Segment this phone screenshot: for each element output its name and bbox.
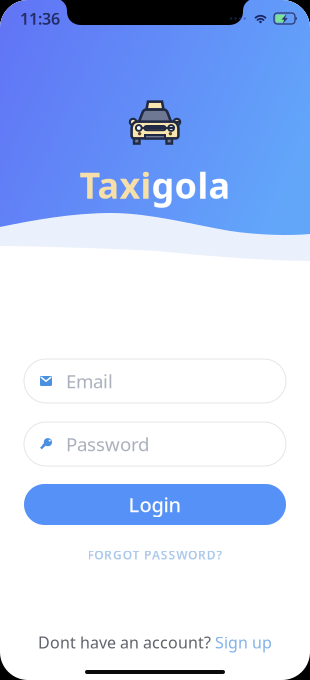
staticText: Sign up bbox=[215, 632, 272, 653]
button[interactable]: Sign up bbox=[215, 632, 272, 653]
staticText: gola bbox=[151, 161, 230, 209]
staticText: FORGOT PASSWORD? bbox=[87, 547, 222, 563]
staticText: Password bbox=[66, 432, 149, 456]
staticText: Dont have an account? bbox=[38, 632, 211, 653]
button[interactable]: Login bbox=[24, 484, 286, 525]
staticText: 11:36 bbox=[20, 8, 60, 29]
button[interactable]: FORGOT PASSWORD? bbox=[77, 543, 232, 567]
staticText: Email bbox=[66, 369, 113, 393]
staticText: Login bbox=[128, 491, 181, 518]
staticText: Taxi bbox=[79, 161, 151, 209]
